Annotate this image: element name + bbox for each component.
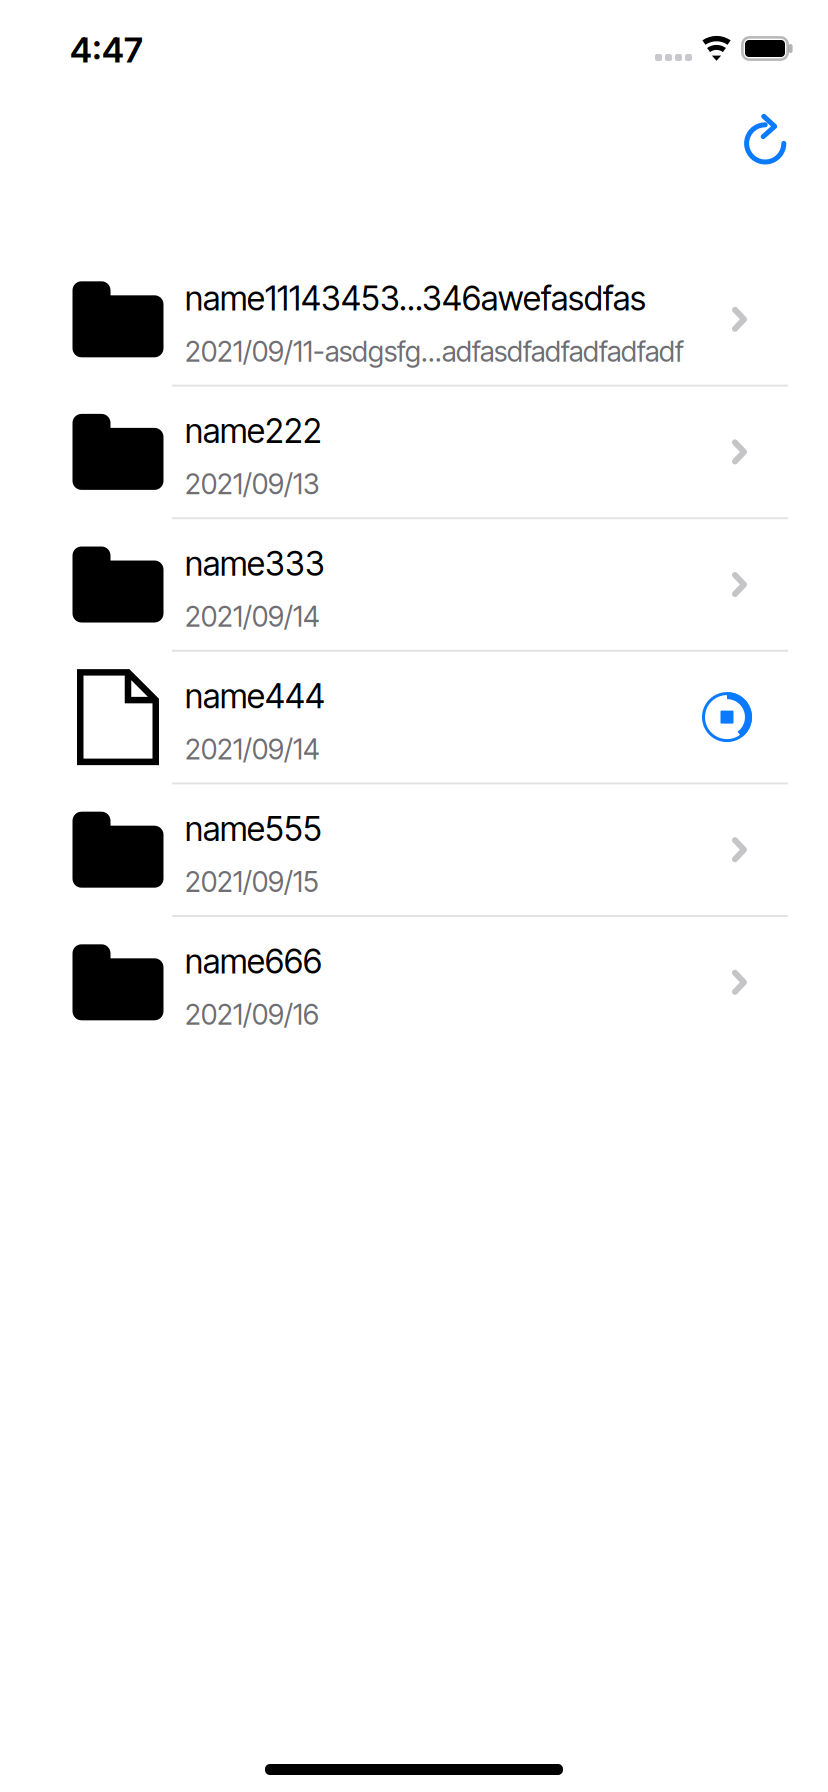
staticText: 2021/09/14 (185, 732, 320, 766)
button[interactable]: name555 (0, 784, 828, 915)
staticText: 4:47 (70, 29, 143, 71)
staticText: 2021/09/13 (185, 467, 320, 501)
button[interactable]: name222 (0, 387, 828, 517)
staticText: 2021/09/15 (185, 865, 319, 899)
staticText: name222 (185, 411, 322, 451)
staticText: name444 (185, 676, 325, 716)
staticText: 2021/09/11-asdgsfg...adfasdfadfadfadfadf (185, 334, 684, 368)
button[interactable]: name666 (0, 917, 828, 1048)
staticText: name11143453...346awefasdfas (185, 278, 646, 318)
staticText: 2021/09/16 (185, 997, 319, 1031)
staticText: name333 (185, 543, 325, 584)
button[interactable]: Stop download (699, 689, 755, 745)
button[interactable]: name11143453...346awefasdfas (0, 254, 828, 385)
staticText: 2021/09/14 (185, 600, 320, 634)
button[interactable]: name333 (0, 519, 828, 650)
staticText: name555 (185, 809, 322, 849)
staticText: name666 (185, 941, 322, 981)
button[interactable]: name444 (0, 652, 828, 782)
button[interactable]: Refresh (721, 96, 809, 184)
